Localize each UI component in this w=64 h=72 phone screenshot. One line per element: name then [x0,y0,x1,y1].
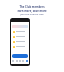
button[interactable]: Promo banner [12,25,28,28]
button[interactable] [12,40,28,43]
button[interactable] [12,45,28,48]
staticText: Join The Club for free [0,13,64,16]
staticText: The Club members [0,5,64,9]
button[interactable] [12,35,28,38]
button[interactable]: Join now [12,54,28,58]
button[interactable] [12,30,28,33]
staticText: earn more, save more [0,9,64,13]
